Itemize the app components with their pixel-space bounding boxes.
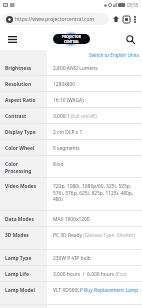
staticText: VLT-XD560LP Buy Replacement Lamp xyxy=(53,287,139,294)
button[interactable]: Site information xyxy=(3,13,109,25)
staticText: PC 3D Ready (Glasses Type: Shutter) xyxy=(53,232,136,239)
staticText: 8-bit xyxy=(53,161,64,168)
button[interactable]: More options xyxy=(131,15,139,23)
staticText: MAX 1600x1200 xyxy=(53,216,90,223)
button[interactable]: Home xyxy=(111,14,121,24)
button[interactable]: Contrast xyxy=(0,108,142,123)
staticText: 2 cm DLP x 1 xyxy=(53,129,83,136)
staticText: 5 segments xyxy=(53,145,80,152)
staticText: 3D Modes xyxy=(5,232,29,239)
button[interactable]: Data Modes xyxy=(0,211,142,226)
button[interactable]: Menu xyxy=(5,32,19,46)
staticText: PROJECTOR xyxy=(62,34,82,39)
staticText: 3,000 hours / 6,000 hours (Eco) xyxy=(53,271,127,278)
staticText: 1280x800 xyxy=(53,81,76,88)
button[interactable]: Search xyxy=(123,32,137,46)
button[interactable]: Switch to English Units xyxy=(89,52,142,58)
button[interactable]: Aspect Ratio xyxy=(0,92,142,107)
button[interactable]: Display Type xyxy=(0,124,142,139)
staticText: 16:10 (WXGA) xyxy=(53,97,84,104)
staticText: Display Type xyxy=(5,129,36,136)
button[interactable]: Tabs xyxy=(121,14,131,24)
button[interactable]: Lamp Type xyxy=(0,250,142,265)
button[interactable]: Lamp Life xyxy=(0,266,142,281)
staticText: Video Modes xyxy=(5,183,37,190)
other: Site information xyxy=(6,16,13,23)
staticText: Brightness xyxy=(5,65,32,72)
staticText: Resolution xyxy=(5,81,32,88)
button[interactable]: 3D Modes xyxy=(0,227,142,249)
staticText: 05:55 xyxy=(127,2,139,8)
staticText: 2,800 ANSI Lumens xyxy=(53,65,98,72)
staticText: 720p, 1080i, 1080p/60, 525i, 525p, 576i,… xyxy=(53,183,139,202)
staticText: Lamp Life xyxy=(5,271,29,278)
button[interactable]: Lamp Model xyxy=(0,282,142,304)
staticText: https://www.projectorcentral.com xyxy=(15,16,95,23)
staticText: Contrast xyxy=(5,113,27,120)
button[interactable]: Color Processing xyxy=(0,156,142,177)
staticText: Color Processing xyxy=(5,161,32,174)
staticText: CENTRAL xyxy=(64,39,80,44)
button[interactable]: Brightness xyxy=(0,60,142,75)
staticText: Aspect Ratio xyxy=(5,97,36,104)
staticText: Lamp Model xyxy=(5,287,35,294)
staticText: Lamp Type xyxy=(5,255,32,262)
button[interactable]: Resolution xyxy=(0,76,142,91)
button[interactable]: Video Modes xyxy=(0,178,142,210)
staticText: 230W P-VIP bulb xyxy=(53,255,91,262)
button[interactable]: Color Wheel xyxy=(0,140,142,155)
staticText: Data Modes xyxy=(5,216,34,223)
button[interactable]: ProjectorCentral home xyxy=(48,31,94,47)
staticText: Color Wheel xyxy=(5,145,35,152)
staticText: 3,000:1 (full on/off) xyxy=(53,113,97,120)
